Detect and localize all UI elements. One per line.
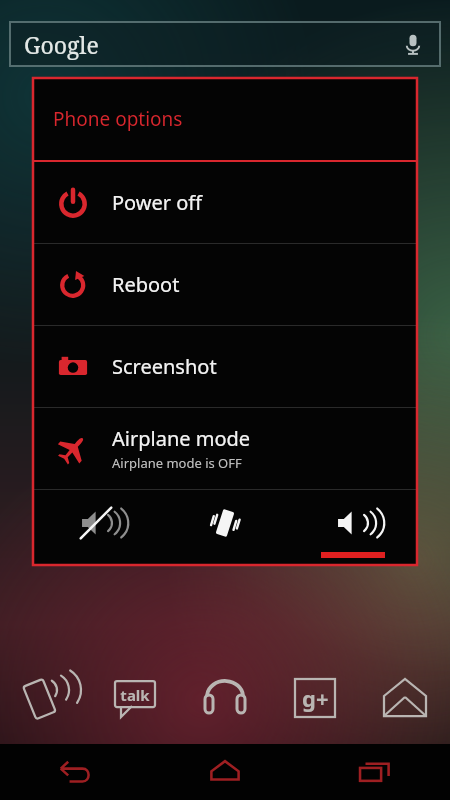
button[interactable]: Google (10, 22, 440, 66)
button[interactable]: Power off (33, 162, 417, 243)
staticText: Reboot (112, 271, 180, 298)
staticText: g+ (302, 683, 329, 713)
button[interactable]: Silent mode (33, 490, 161, 565)
button[interactable]: Back (0, 744, 150, 800)
staticText: Google (24, 29, 99, 60)
button[interactable]: Talk (90, 652, 180, 744)
button[interactable]: Voice search (400, 31, 426, 57)
button[interactable]: Google Plus (270, 652, 360, 744)
button[interactable]: Airplane mode (33, 408, 417, 489)
button[interactable]: Android Beam (0, 652, 90, 744)
button[interactable]: Home (150, 744, 300, 800)
button[interactable]: Recent apps (300, 744, 450, 800)
button[interactable]: Reboot (33, 244, 417, 325)
staticText: talk (120, 685, 150, 705)
button[interactable]: Vibrate mode (161, 490, 289, 565)
staticText: Screenshot (112, 353, 217, 380)
staticText: Airplane mode is OFF (112, 454, 242, 472)
button[interactable]: Play Music (180, 652, 270, 744)
staticText: Power off (112, 189, 203, 216)
staticText: Airplane mode (112, 425, 251, 452)
button[interactable]: Email (360, 652, 450, 744)
staticText: Phone options (53, 106, 183, 132)
button[interactable]: Screenshot (33, 326, 417, 407)
button[interactable]: Sound on (289, 490, 417, 565)
